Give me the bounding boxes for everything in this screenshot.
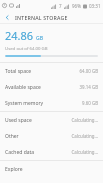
- button[interactable]: Total space: [0, 63, 103, 79]
- staticText: Other: [5, 133, 19, 140]
- staticText: 9.60 GB: [82, 100, 98, 106]
- staticText: Calculating...: [71, 149, 98, 155]
- staticText: 39.14 GB: [79, 84, 98, 90]
- button[interactable]: Other: [0, 128, 103, 144]
- staticText: Calculating...: [71, 133, 98, 139]
- button[interactable]: Cached data: [0, 144, 103, 160]
- button[interactable]: Used space: [0, 112, 103, 128]
- staticText: 96%: [72, 3, 81, 9]
- staticText: Used out of 64.00 GB: [5, 45, 48, 51]
- staticText: 03:31: [89, 3, 101, 9]
- staticText: Cached data: [5, 149, 35, 156]
- staticText: 7: [59, 3, 62, 9]
- button[interactable]: Navigate up: [0, 11, 15, 23]
- staticText: Total space: [5, 68, 32, 75]
- staticText: Explore: [5, 166, 23, 173]
- staticText: Available space: [5, 84, 41, 91]
- button[interactable]: Available space: [0, 79, 103, 95]
- staticText: Calculating...: [71, 117, 98, 123]
- staticText: GB: [36, 35, 43, 42]
- staticText: 24.86: [5, 28, 34, 43]
- staticText: System memory: [5, 100, 44, 107]
- staticText: Used space: [5, 117, 32, 124]
- staticText: INTERNAL STORAGE: [15, 14, 68, 21]
- button[interactable]: System memory: [0, 95, 103, 111]
- button[interactable]: Explore: [0, 161, 103, 177]
- staticText: 64.00 GB: [79, 68, 98, 74]
